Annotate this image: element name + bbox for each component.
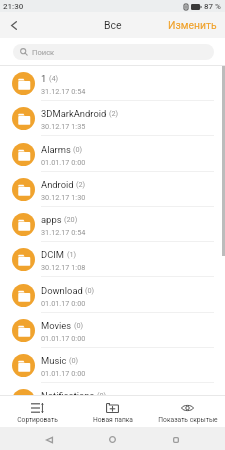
staticText: (0) — [69, 356, 79, 365]
button[interactable]: New folder — [75, 395, 150, 427]
staticText: Показать скрытые — [158, 416, 218, 424]
staticText: (2) — [109, 109, 119, 118]
staticText: DCIM — [41, 249, 65, 260]
staticText: Android — [41, 179, 74, 190]
button[interactable]: Sort — [0, 395, 75, 427]
button[interactable]: apps — [0, 207, 225, 242]
staticText: Поиск — [32, 48, 55, 57]
staticText: 01.01.17 0:00 — [41, 334, 86, 343]
button[interactable]: Alarms — [0, 137, 225, 172]
staticText: 31.12.17 0:54 — [41, 228, 86, 237]
staticText: (2) — [76, 180, 86, 189]
staticText: 1 — [41, 73, 47, 84]
staticText: (4) — [49, 74, 59, 83]
staticText: Alarms — [41, 144, 71, 155]
staticText: 87 % — [204, 2, 221, 11]
staticText: 21:30 — [3, 2, 24, 11]
button[interactable]: Поиск — [13, 44, 214, 60]
button[interactable]: Back — [0, 12, 28, 38]
staticText: Все — [104, 19, 122, 31]
staticText: Download — [41, 285, 83, 296]
staticText: (0) — [73, 145, 83, 154]
staticText: 30.12.17 1:08 — [41, 263, 86, 272]
button[interactable]: Movies — [0, 313, 225, 348]
other: Show hidden — [181, 404, 194, 412]
button[interactable]: Show hidden — [150, 395, 225, 427]
staticText: (0) — [85, 286, 95, 295]
button[interactable]: Notifications — [0, 383, 225, 395]
button[interactable]: DCIM — [0, 242, 225, 277]
button[interactable]: Back — [34, 427, 65, 450]
staticText: 30.12.17 1:30 — [41, 193, 86, 202]
staticText: Сортировать — [17, 416, 58, 424]
staticText: 01.01.17 0:00 — [41, 369, 86, 378]
staticText: 01.01.17 0:00 — [41, 158, 86, 167]
button[interactable]: Recents — [160, 427, 191, 450]
staticText: Music — [41, 355, 67, 366]
staticText: (1) — [67, 250, 77, 259]
staticText: (0) — [97, 391, 107, 395]
staticText: (20) — [64, 215, 78, 224]
staticText: Notifications — [41, 390, 95, 395]
button[interactable]: Download — [0, 278, 225, 313]
staticText: 30.12.17 1:35 — [41, 122, 86, 131]
staticText: 31.12.17 0:54 — [41, 87, 86, 96]
staticText: 01.01.17 0:00 — [41, 299, 86, 308]
staticText: 3DMarkAndroid — [41, 108, 107, 119]
button[interactable]: Music — [0, 348, 225, 383]
other: New folder — [106, 403, 119, 413]
staticText: Новая папка — [93, 416, 133, 424]
staticText: (0) — [74, 321, 84, 330]
button[interactable]: 3DMarkAndroid — [0, 101, 225, 136]
staticText: apps — [41, 214, 62, 225]
button[interactable]: Home — [97, 427, 128, 450]
button[interactable]: Изменить — [160, 12, 225, 38]
button[interactable]: Android — [0, 172, 225, 207]
button[interactable]: 1 — [0, 66, 225, 101]
staticText: Изменить — [168, 19, 217, 31]
other: Sort — [31, 403, 44, 413]
staticText: Movies — [41, 320, 72, 331]
